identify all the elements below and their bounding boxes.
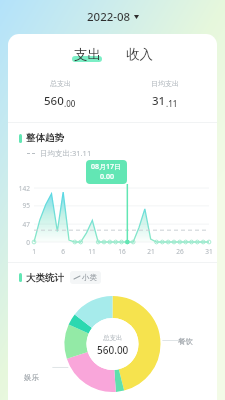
button[interactable]: Choose month 2022-08 bbox=[79, 6, 147, 28]
staticText: 0.00 bbox=[100, 172, 114, 182]
staticText: 总支出 bbox=[103, 334, 123, 342]
staticText: .00 bbox=[64, 98, 76, 109]
staticText: 560 bbox=[44, 93, 64, 109]
staticText: 小类 bbox=[82, 273, 97, 282]
button[interactable]: 收入 bbox=[120, 44, 159, 65]
staticText: 收入 bbox=[126, 46, 153, 63]
staticText: 31 bbox=[152, 93, 166, 109]
staticText: 16 bbox=[115, 247, 129, 256]
staticText: 11 bbox=[85, 247, 99, 256]
staticText: 2022-08 bbox=[87, 9, 131, 25]
button[interactable]: 小类 bbox=[70, 271, 101, 284]
staticText: 1 bbox=[27, 247, 41, 256]
staticText: 31 bbox=[202, 247, 216, 256]
staticText: 娱乐 bbox=[24, 373, 39, 382]
staticText: 26 bbox=[173, 247, 187, 256]
staticText: 餐饮 bbox=[178, 337, 193, 346]
staticText: 95 bbox=[11, 201, 30, 210]
staticText: 08月17日 bbox=[91, 162, 122, 172]
staticText: 142 bbox=[11, 184, 30, 193]
staticText: 6 bbox=[56, 247, 70, 256]
staticText: 21 bbox=[144, 247, 158, 256]
staticText: 日均支出 bbox=[151, 79, 179, 88]
button[interactable]: 支出 bbox=[66, 44, 108, 65]
staticText: 大类统计 bbox=[26, 272, 64, 284]
staticText: 总支出 bbox=[50, 79, 71, 88]
staticText: 整体趋势 bbox=[26, 132, 64, 144]
staticText: .11 bbox=[166, 98, 178, 109]
staticText: 560.00 bbox=[97, 343, 129, 357]
staticText: 47 bbox=[11, 220, 30, 229]
staticText: 0 bbox=[11, 238, 30, 247]
staticText: 支出 bbox=[74, 46, 101, 63]
staticText: 日均支出:31.11 bbox=[40, 148, 92, 158]
